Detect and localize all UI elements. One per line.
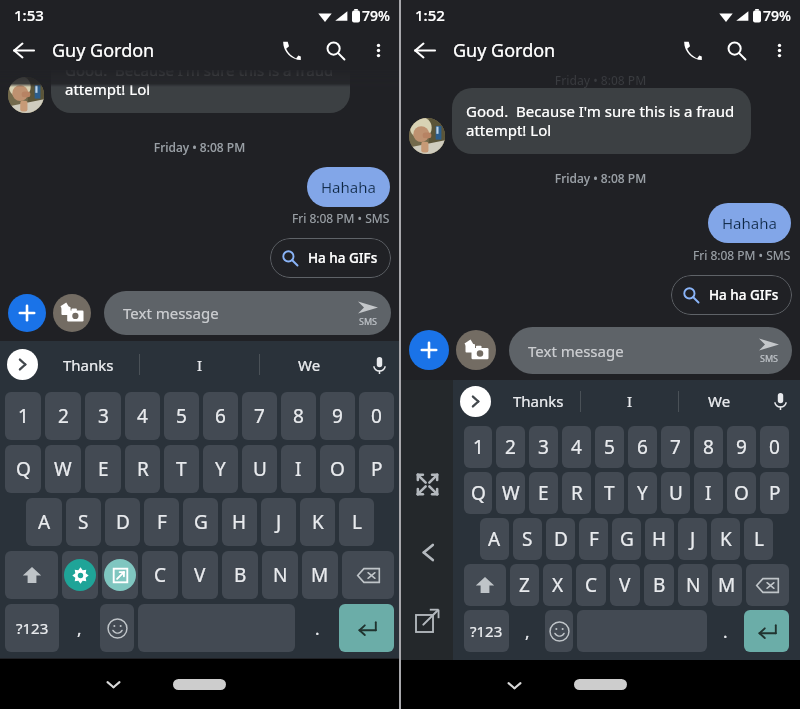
- button[interactable]: Voice input: [760, 381, 800, 421]
- button[interactable]: D: [105, 498, 140, 546]
- button[interactable]: Y: [203, 445, 238, 493]
- button[interactable]: 1: [464, 426, 492, 468]
- button[interactable]: 0: [359, 392, 394, 440]
- button[interactable]: Shift: [464, 564, 506, 606]
- button[interactable]: Z: [510, 564, 539, 606]
- button[interactable]: T: [164, 445, 199, 493]
- button[interactable]: E: [85, 445, 121, 493]
- button[interactable]: E: [529, 472, 558, 514]
- button[interactable]: Search: [714, 30, 758, 70]
- button[interactable]: ?123: [464, 610, 509, 652]
- button[interactable]: 1: [5, 392, 41, 440]
- button[interactable]: L: [744, 518, 773, 560]
- button[interactable]: Text message: [104, 291, 391, 335]
- button[interactable]: .: [711, 610, 740, 652]
- button[interactable]: Back: [401, 30, 447, 70]
- button[interactable]: Voice input: [359, 345, 399, 385]
- button[interactable]: U: [242, 445, 277, 493]
- button[interactable]: Shift: [5, 551, 58, 599]
- button[interactable]: K: [300, 498, 335, 546]
- button[interactable]: More options: [758, 30, 800, 70]
- button[interactable]: A: [26, 498, 62, 546]
- button[interactable]: Hide keyboard: [496, 667, 532, 703]
- button[interactable]: G: [612, 518, 641, 560]
- button[interactable]: 9: [727, 426, 756, 468]
- button[interactable]: P: [760, 472, 789, 514]
- button[interactable]: 8: [281, 392, 316, 440]
- button[interactable]: 3: [85, 392, 121, 440]
- button[interactable]: Expand toolbar: [460, 386, 491, 417]
- button[interactable]: P: [359, 445, 394, 493]
- button[interactable]: ?123: [5, 604, 59, 652]
- button[interactable]: J: [678, 518, 707, 560]
- button[interactable]: 6: [203, 392, 238, 440]
- button[interactable]: More options: [357, 30, 399, 70]
- button[interactable]: Keyboard option: [102, 551, 138, 599]
- button[interactable]: C: [576, 564, 606, 606]
- button[interactable]: V: [610, 564, 640, 606]
- button[interactable]: I: [694, 472, 723, 514]
- button[interactable]: J: [261, 498, 296, 546]
- button[interactable]: 4: [125, 392, 160, 440]
- button[interactable]: Ha ha GIFs: [671, 275, 792, 315]
- button[interactable]: Camera: [456, 330, 496, 370]
- button[interactable]: Emoji: [100, 604, 134, 652]
- button[interactable]: R: [125, 445, 160, 493]
- button[interactable]: Q: [5, 445, 41, 493]
- button[interactable]: D: [546, 518, 575, 560]
- button[interactable]: ,: [513, 610, 541, 652]
- button[interactable]: 7: [661, 426, 690, 468]
- button[interactable]: W: [496, 472, 525, 514]
- button[interactable]: 5: [164, 392, 199, 440]
- button[interactable]: S: [66, 498, 101, 546]
- button[interactable]: Resize keyboard: [406, 463, 448, 505]
- button[interactable]: Keyboard option: [62, 551, 98, 599]
- button[interactable]: B: [222, 551, 258, 599]
- button[interactable]: 9: [320, 392, 355, 440]
- button[interactable]: N: [262, 551, 298, 599]
- button[interactable]: Hide keyboard: [95, 666, 131, 702]
- button[interactable]: Floating keyboard: [406, 599, 448, 641]
- button[interactable]: Y: [628, 472, 657, 514]
- button[interactable]: Camera: [53, 294, 91, 332]
- button[interactable]: Call: [670, 30, 714, 70]
- button[interactable]: U: [661, 472, 690, 514]
- button[interactable]: 0: [760, 426, 789, 468]
- button[interactable]: O: [727, 472, 756, 514]
- button[interactable]: ,: [63, 604, 96, 652]
- button[interactable]: N: [678, 564, 708, 606]
- button[interactable]: K: [711, 518, 740, 560]
- button[interactable]: W: [45, 445, 81, 493]
- button[interactable]: Move left: [406, 531, 448, 573]
- button[interactable]: G: [183, 498, 218, 546]
- button[interactable]: S: [513, 518, 542, 560]
- button[interactable]: Home: [173, 679, 226, 690]
- button[interactable]: Call: [269, 30, 313, 70]
- button[interactable]: 7: [242, 392, 277, 440]
- button[interactable]: O: [320, 445, 355, 493]
- button[interactable]: V: [182, 551, 218, 599]
- button[interactable]: H: [222, 498, 257, 546]
- button[interactable]: L: [339, 498, 374, 546]
- button[interactable]: Add attachment: [8, 294, 46, 332]
- button[interactable]: C: [142, 551, 178, 599]
- button[interactable]: Text message: [509, 327, 792, 374]
- button[interactable]: H: [645, 518, 674, 560]
- button[interactable]: F: [579, 518, 608, 560]
- button[interactable]: .: [299, 604, 335, 652]
- button[interactable]: Q: [464, 472, 492, 514]
- button[interactable]: Add attachment: [409, 330, 449, 370]
- button[interactable]: 2: [45, 392, 81, 440]
- button[interactable]: Search: [313, 30, 357, 70]
- button[interactable]: X: [543, 564, 572, 606]
- button[interactable]: 5: [595, 426, 624, 468]
- button[interactable]: Back: [0, 30, 46, 70]
- button[interactable]: Backspace: [746, 564, 789, 606]
- button[interactable]: M: [302, 551, 338, 599]
- button[interactable]: Enter: [339, 604, 394, 652]
- button[interactable]: Enter: [744, 610, 789, 652]
- button[interactable]: A: [480, 518, 509, 560]
- button[interactable]: I: [281, 445, 316, 493]
